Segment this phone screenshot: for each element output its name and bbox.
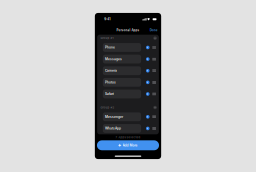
button[interactable]: Safari xyxy=(97,88,159,100)
staticText: Add More xyxy=(123,143,138,147)
button[interactable]: Done xyxy=(150,28,158,32)
button[interactable]: Group options xyxy=(153,106,157,109)
staticText: Group #2 xyxy=(100,106,114,109)
button[interactable]: Photos xyxy=(97,76,159,88)
staticText: 7 Apps Selected xyxy=(115,136,140,139)
staticText: Personal Apps xyxy=(116,28,139,32)
button[interactable]: Phone xyxy=(97,42,159,53)
staticText: Messages xyxy=(105,57,122,61)
staticText: Messenger xyxy=(105,115,123,119)
staticText: Photos xyxy=(105,80,116,84)
staticText: Group #1 xyxy=(100,36,113,40)
staticText: 9:41 xyxy=(104,17,110,21)
button[interactable]: Messages xyxy=(97,53,159,65)
button[interactable]: Group options xyxy=(153,36,157,40)
staticText: Done xyxy=(150,28,158,32)
staticText: Safari xyxy=(105,92,114,96)
staticText: Camera xyxy=(105,69,117,73)
button[interactable]: Camera xyxy=(97,65,159,76)
button[interactable]: Add More xyxy=(97,140,159,150)
staticText: WhatsApp xyxy=(105,126,121,130)
button[interactable]: WhatsApp xyxy=(97,123,159,134)
staticText: Phone xyxy=(105,46,115,49)
button[interactable]: Messenger xyxy=(97,111,159,123)
